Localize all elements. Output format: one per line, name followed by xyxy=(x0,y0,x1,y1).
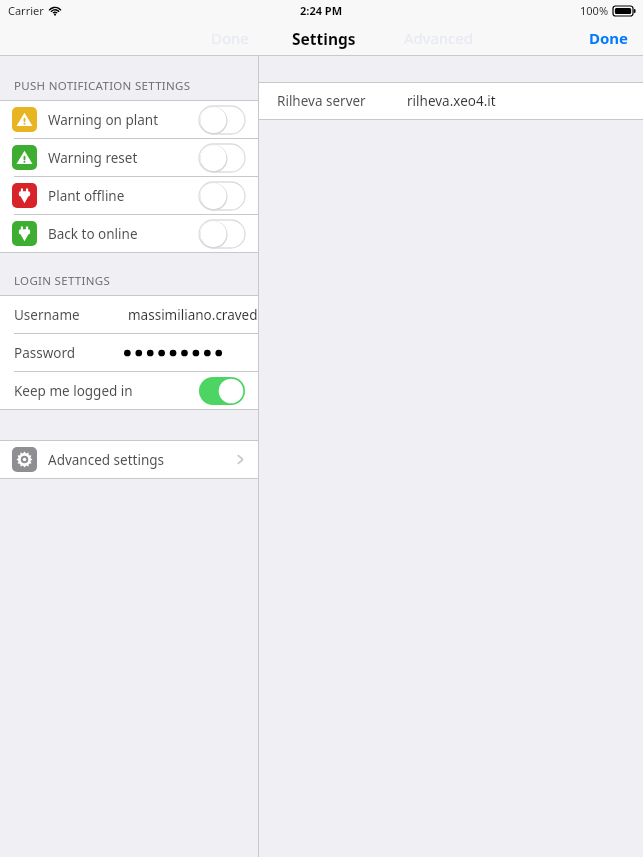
button[interactable]: Password xyxy=(0,334,258,371)
button[interactable]: Back to online xyxy=(0,215,258,252)
button[interactable]: Disabled xyxy=(197,143,246,173)
staticText: Advanced xyxy=(404,28,474,48)
staticText: rilheva.xeo4.it xyxy=(407,92,496,110)
staticText: Warning reset xyxy=(48,149,138,167)
staticText: Plant offline xyxy=(48,187,125,205)
button[interactable]: Disabled xyxy=(197,219,246,249)
button[interactable]: Disabled xyxy=(197,181,246,211)
button[interactable]: Rilheva server xyxy=(259,83,643,119)
staticText: massimiliano.cravedi… xyxy=(128,306,272,324)
button[interactable]: Warning on plant xyxy=(0,101,258,138)
staticText: Done xyxy=(589,28,629,48)
button[interactable]: Warning reset xyxy=(0,139,258,176)
staticText: 100% xyxy=(580,3,609,18)
button[interactable]: Enabled xyxy=(197,376,246,406)
staticText: Rilheva server xyxy=(277,92,366,110)
staticText: Settings xyxy=(292,28,356,49)
staticText: Carrier xyxy=(8,3,44,18)
button[interactable]: Advanced settings xyxy=(0,441,258,478)
button[interactable]: Keep me logged in xyxy=(0,372,258,409)
staticText: Done xyxy=(211,28,249,48)
staticText: Advanced settings xyxy=(48,451,165,469)
staticText: Keep me logged in xyxy=(14,382,133,400)
staticText: Username xyxy=(14,306,80,324)
button[interactable]: Plant offline xyxy=(0,177,258,214)
button[interactable]: Disabled xyxy=(197,105,246,135)
staticText: LOGIN SETTINGS xyxy=(14,273,111,289)
staticText: 2:24 PM xyxy=(300,3,343,18)
staticText: Warning on plant xyxy=(48,111,159,129)
button[interactable]: Done xyxy=(589,28,629,48)
staticText: PUSH NOTIFICATION SETTINGS xyxy=(14,78,191,94)
button[interactable]: Username xyxy=(0,296,258,333)
staticText: Back to online xyxy=(48,225,138,243)
staticText: Password xyxy=(14,344,76,362)
